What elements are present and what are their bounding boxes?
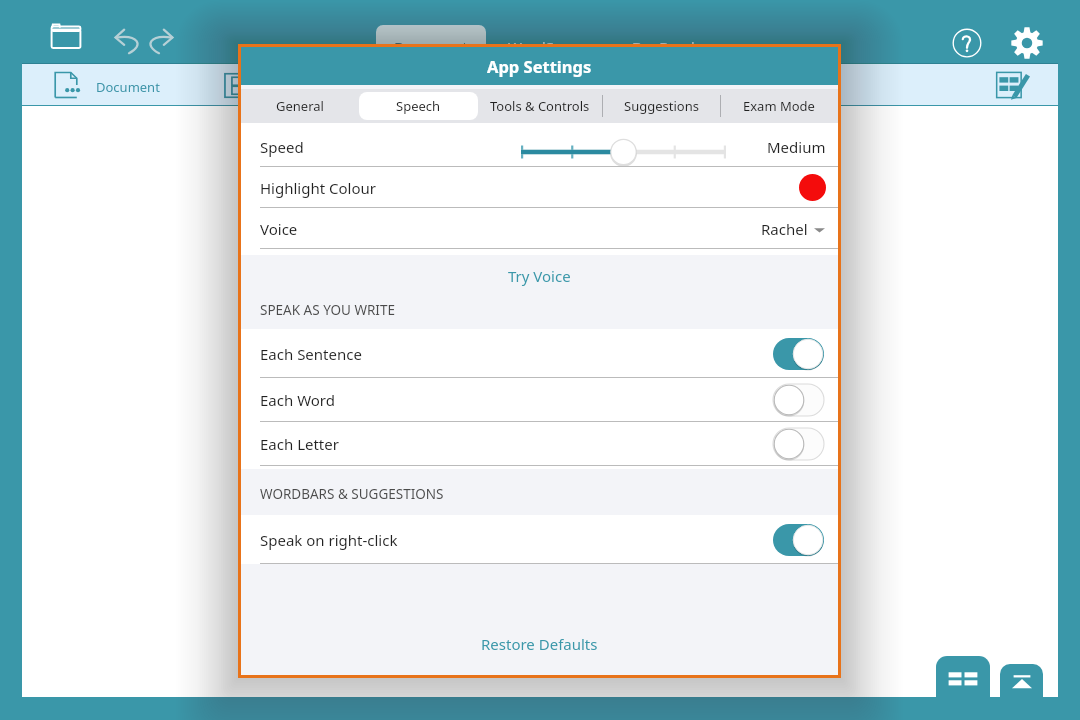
staticText: WORDBARS & SUGGESTIONS xyxy=(260,485,444,503)
staticText: Speech xyxy=(396,97,441,115)
staticText: Rachel xyxy=(761,219,808,239)
staticText: Each Letter xyxy=(260,434,339,454)
button[interactable]: Speech xyxy=(359,89,478,123)
button[interactable]: Layout xyxy=(219,68,253,103)
staticText: Voice xyxy=(260,219,298,239)
button[interactable]: Exam Mode xyxy=(720,89,838,123)
button[interactable]: Off xyxy=(773,428,824,460)
button[interactable]: Speed slider xyxy=(521,136,726,168)
staticText: DocReader xyxy=(632,37,710,57)
staticText: Tools & Controls xyxy=(490,97,590,115)
staticText: Exam Mode xyxy=(743,97,815,115)
button[interactable]: Collapse panel xyxy=(1000,664,1043,697)
button[interactable]: Document xyxy=(49,67,89,103)
staticText: Speak on right-click xyxy=(260,530,398,550)
button[interactable]: Voice xyxy=(241,208,838,249)
button[interactable]: Document xyxy=(376,25,486,59)
button[interactable]: On xyxy=(773,524,824,556)
button[interactable]: On xyxy=(773,338,824,370)
button[interactable]: Edit table xyxy=(991,65,1035,105)
staticText: Try Voice xyxy=(508,266,571,286)
button[interactable]: Each Sentence xyxy=(241,329,838,378)
button[interactable]: Wordbars xyxy=(936,656,990,697)
staticText: Medium xyxy=(767,137,826,157)
staticText: Speed xyxy=(260,137,304,157)
staticText: Document xyxy=(394,37,468,57)
button[interactable]: Settings xyxy=(1006,22,1048,64)
button[interactable]: General xyxy=(241,89,359,123)
staticText: Suggestions xyxy=(624,97,699,115)
button[interactable]: Speak on right-click xyxy=(241,515,838,564)
staticText: General xyxy=(276,97,324,115)
staticText: Restore Defaults xyxy=(481,634,598,654)
staticText: Document xyxy=(96,78,160,96)
button[interactable]: Speed xyxy=(241,126,838,167)
button[interactable]: Off xyxy=(773,384,824,416)
staticText: SPEAK AS YOU WRITE xyxy=(260,301,395,319)
button[interactable]: Restore Defaults xyxy=(459,626,620,662)
button[interactable]: Document xyxy=(96,78,160,96)
button[interactable]: Try Voice xyxy=(241,255,838,297)
staticText: Highlight Colour xyxy=(260,178,376,198)
button[interactable]: Each Letter xyxy=(241,422,838,466)
staticText: WordSpace xyxy=(508,37,588,57)
button[interactable]: WordSpace xyxy=(486,25,610,59)
button[interactable]: Each Word xyxy=(241,378,838,422)
button[interactable]: Open file xyxy=(46,17,96,65)
button[interactable]: Suggestions xyxy=(602,89,720,123)
button[interactable]: Tools & Controls xyxy=(478,89,602,123)
button[interactable]: Highlight Colour xyxy=(241,167,838,208)
staticText: App Settings xyxy=(487,55,592,77)
button[interactable]: DocReader xyxy=(610,25,732,59)
staticText: Each Word xyxy=(260,390,335,410)
button[interactable]: Undo xyxy=(109,23,149,61)
staticText: Each Sentence xyxy=(260,344,362,364)
button[interactable]: Redo xyxy=(139,23,179,61)
button[interactable]: Help xyxy=(947,23,987,63)
